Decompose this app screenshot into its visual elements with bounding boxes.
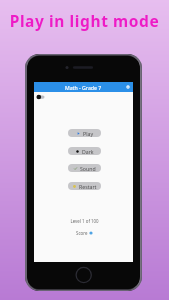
button[interactable]: Restart [68,182,101,190]
button[interactable]: Sound [68,164,101,172]
staticText: Restart [79,183,97,190]
staticText: Sound [80,165,96,172]
button[interactable]: Info [125,84,131,90]
staticText: Play in light mode [0,10,169,31]
button[interactable]: Toggle dark mode [36,94,46,100]
staticText: Play [83,130,94,137]
button[interactable]: Play [68,129,101,137]
staticText: Dark [82,148,94,155]
staticText: Level 1 of 100 [35,218,134,224]
button[interactable]: Dark [68,147,101,155]
staticText: Math - Grade 7 [65,84,102,91]
staticText: Score [76,230,89,236]
